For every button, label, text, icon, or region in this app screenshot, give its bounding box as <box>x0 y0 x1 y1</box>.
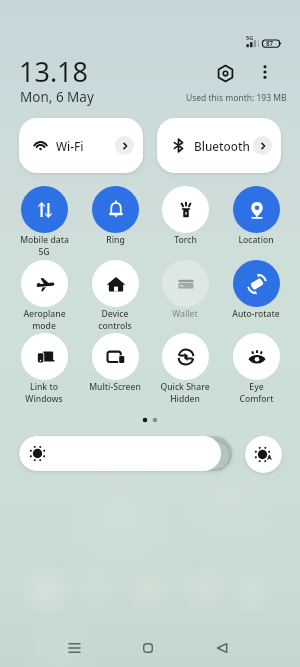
staticText: Link to <box>30 381 58 393</box>
staticText: controls <box>98 320 132 332</box>
staticText: 5G <box>246 34 254 41</box>
button[interactable]: Mobile data <box>9 185 79 259</box>
staticText: Windows <box>25 393 63 405</box>
button[interactable]: Torch <box>150 185 220 259</box>
staticText: mode <box>32 320 56 332</box>
staticText: Aeroplane <box>23 308 66 320</box>
staticText: Torch <box>174 234 197 246</box>
staticText: Mobile data <box>20 234 69 246</box>
button[interactable]: Auto-rotate <box>221 259 291 333</box>
button[interactable]: Location <box>221 185 291 259</box>
staticText: Multi-Screen <box>89 381 141 393</box>
button[interactable]: Back <box>202 628 242 667</box>
button[interactable]: Eye <box>221 332 291 406</box>
staticText: Quick Share <box>160 381 210 393</box>
button[interactable]: Recent apps <box>54 628 94 667</box>
staticText: Wi-Fi <box>56 138 84 154</box>
button[interactable]: Home <box>128 628 168 667</box>
button[interactable]: Quick Share <box>150 332 220 406</box>
staticText: Wallet <box>172 308 198 320</box>
staticText: Comfort <box>239 393 274 405</box>
staticText: A <box>267 453 272 463</box>
staticText: 87 <box>266 39 274 47</box>
button[interactable]: More options <box>253 60 276 83</box>
staticText: Mon, 6 May <box>20 88 94 106</box>
staticText: Location <box>238 234 274 246</box>
button[interactable]: Brightness <box>19 436 232 471</box>
staticText: 13.18 <box>19 53 89 90</box>
button[interactable]: Multi-Screen <box>80 332 150 406</box>
button[interactable]: Link to <box>9 332 79 406</box>
button[interactable]: Settings <box>212 60 239 87</box>
staticText: Ring <box>106 234 125 246</box>
button[interactable]: Auto brightness <box>245 436 282 473</box>
staticText: Device <box>101 308 129 320</box>
button[interactable]: Ring <box>80 185 150 259</box>
staticText: Eye <box>249 381 264 393</box>
staticText: Auto-rotate <box>232 308 280 320</box>
button[interactable]: Aeroplane <box>9 259 79 333</box>
button[interactable]: Device <box>80 259 150 333</box>
button[interactable]: Wallet <box>150 259 220 333</box>
staticText: Hidden <box>170 393 200 405</box>
staticText: Used this month: 193 MB <box>186 92 287 104</box>
button[interactable]: Wi-Fi <box>19 118 143 173</box>
staticText: 5G <box>38 246 50 258</box>
staticText: Bluetooth <box>194 138 250 154</box>
button[interactable]: Bluetooth <box>157 118 281 173</box>
